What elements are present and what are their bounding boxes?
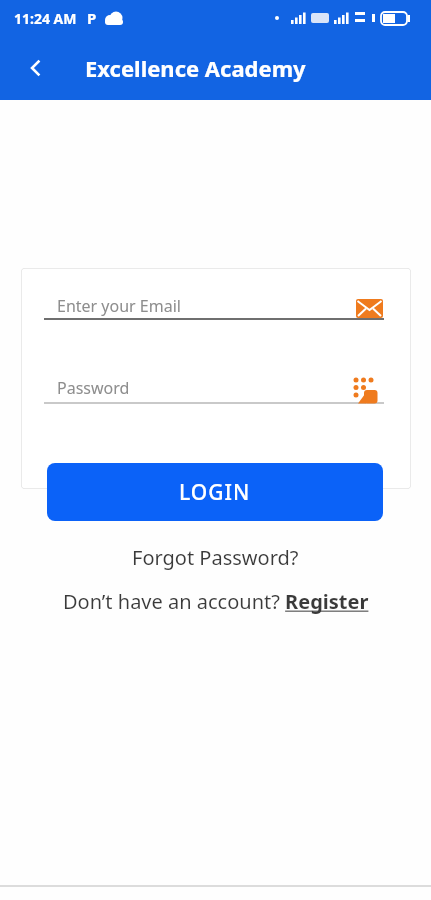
button[interactable]: Don’t have an account? Register [0,588,431,614]
staticText: 11:24 AM [14,9,77,28]
button[interactable]: LOGIN [47,463,383,521]
staticText: Password [57,377,130,399]
staticText: Don’t have an account? Register [63,588,369,614]
staticText: P [87,8,97,28]
button[interactable] [18,50,54,86]
staticText: Enter your Email [57,295,181,317]
button[interactable]: Forgot Password? [0,544,431,570]
staticText: Forgot Password? [132,544,299,570]
staticText: LOGIN [179,478,251,507]
staticText: Excellence Academy [85,53,306,83]
